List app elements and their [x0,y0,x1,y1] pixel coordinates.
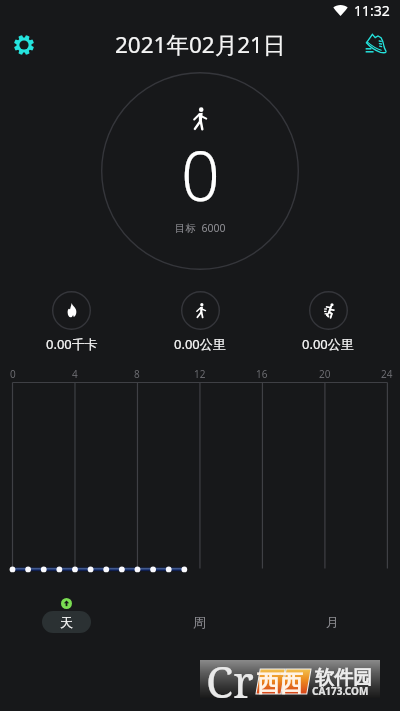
staticText: 0.00公里 [174,335,226,353]
staticText: 12 [194,367,206,381]
staticText: CA173.COM [312,684,369,698]
staticText: 16 [256,367,268,381]
button[interactable] [309,291,348,330]
staticText: 周 [193,614,206,630]
button[interactable]: 周 [175,611,224,633]
staticText: 西西 [257,669,303,698]
staticText: 11:32 [354,1,390,20]
staticText: 4 [72,367,78,381]
staticText: 月 [326,614,339,630]
button[interactable]: 月 [308,611,357,633]
staticText: 目标 6000 [175,221,226,235]
staticText: Cr [206,651,254,711]
staticText: 2021年02月21日 [115,29,286,60]
button[interactable] [181,291,220,330]
staticText: 24 [381,367,393,381]
staticText: 8 [134,367,140,381]
staticText: 0.00千卡 [46,335,98,353]
staticText: 0.00公里 [302,335,354,353]
staticText: 0 [10,367,16,381]
staticText: 软件园 [315,666,372,690]
button[interactable]: Start run [358,28,390,58]
button[interactable]: 天 [42,611,91,633]
button[interactable] [52,291,91,330]
staticText: 20 [319,367,331,381]
staticText: 天 [60,614,73,630]
button[interactable]: Settings [7,28,41,62]
staticText: 0 [181,128,220,221]
